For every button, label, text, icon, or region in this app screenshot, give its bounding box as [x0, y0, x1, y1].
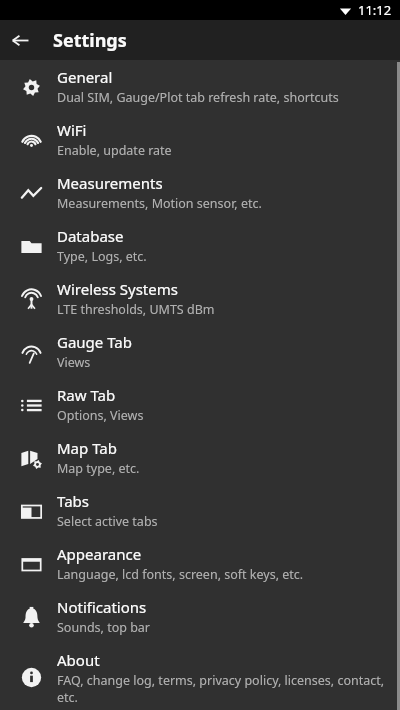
staticText: Sounds, top bar: [57, 619, 151, 636]
staticText: Select active tabs: [57, 513, 158, 530]
staticText: Gauge Tab: [57, 332, 132, 352]
staticText: Measurements, Motion sensor, etc.: [57, 195, 262, 212]
staticText: Enable, update rate: [57, 142, 172, 159]
button[interactable]: Raw Tab: [0, 378, 400, 431]
staticText: General: [57, 67, 113, 87]
staticText: Options, Views: [57, 407, 144, 424]
staticText: Wireless Systems: [57, 279, 178, 299]
staticText: Settings: [53, 28, 127, 53]
staticText: 11:12: [358, 1, 392, 19]
button[interactable]: Measurements: [0, 166, 400, 219]
staticText: Type, Logs, etc.: [57, 248, 147, 265]
staticText: Tabs: [57, 491, 89, 511]
button[interactable]: Database: [0, 219, 400, 272]
staticText: About: [57, 650, 100, 670]
staticText: WiFi: [57, 120, 87, 140]
button[interactable]: General: [0, 60, 400, 113]
staticText: Map Tab: [57, 438, 117, 458]
button[interactable]: Wireless Systems: [0, 272, 400, 325]
button[interactable]: WiFi: [0, 113, 400, 166]
staticText: Notifications: [57, 597, 147, 617]
button[interactable]: Gauge Tab: [0, 325, 400, 378]
staticText: Raw Tab: [57, 385, 116, 405]
staticText: Dual SIM, Gauge/Plot tab refresh rate, s…: [57, 89, 339, 106]
button[interactable]: About: [0, 643, 400, 710]
button[interactable]: Map Tab: [0, 431, 400, 484]
button[interactable]: Notifications: [0, 590, 400, 643]
staticText: Appearance: [57, 544, 142, 564]
button[interactable]: Tabs: [0, 484, 400, 537]
staticText: FAQ, change log, terms, privacy policy, …: [57, 672, 386, 703]
staticText: Measurements: [57, 173, 163, 193]
staticText: Views: [57, 354, 91, 371]
staticText: LTE thresholds, UMTS dBm: [57, 301, 215, 318]
staticText: Language, lcd fonts, screen, soft keys, …: [57, 566, 304, 583]
staticText: Database: [57, 226, 124, 246]
staticText: Map type, etc.: [57, 460, 140, 477]
button[interactable]: Back: [0, 20, 40, 60]
button[interactable]: Appearance: [0, 537, 400, 590]
